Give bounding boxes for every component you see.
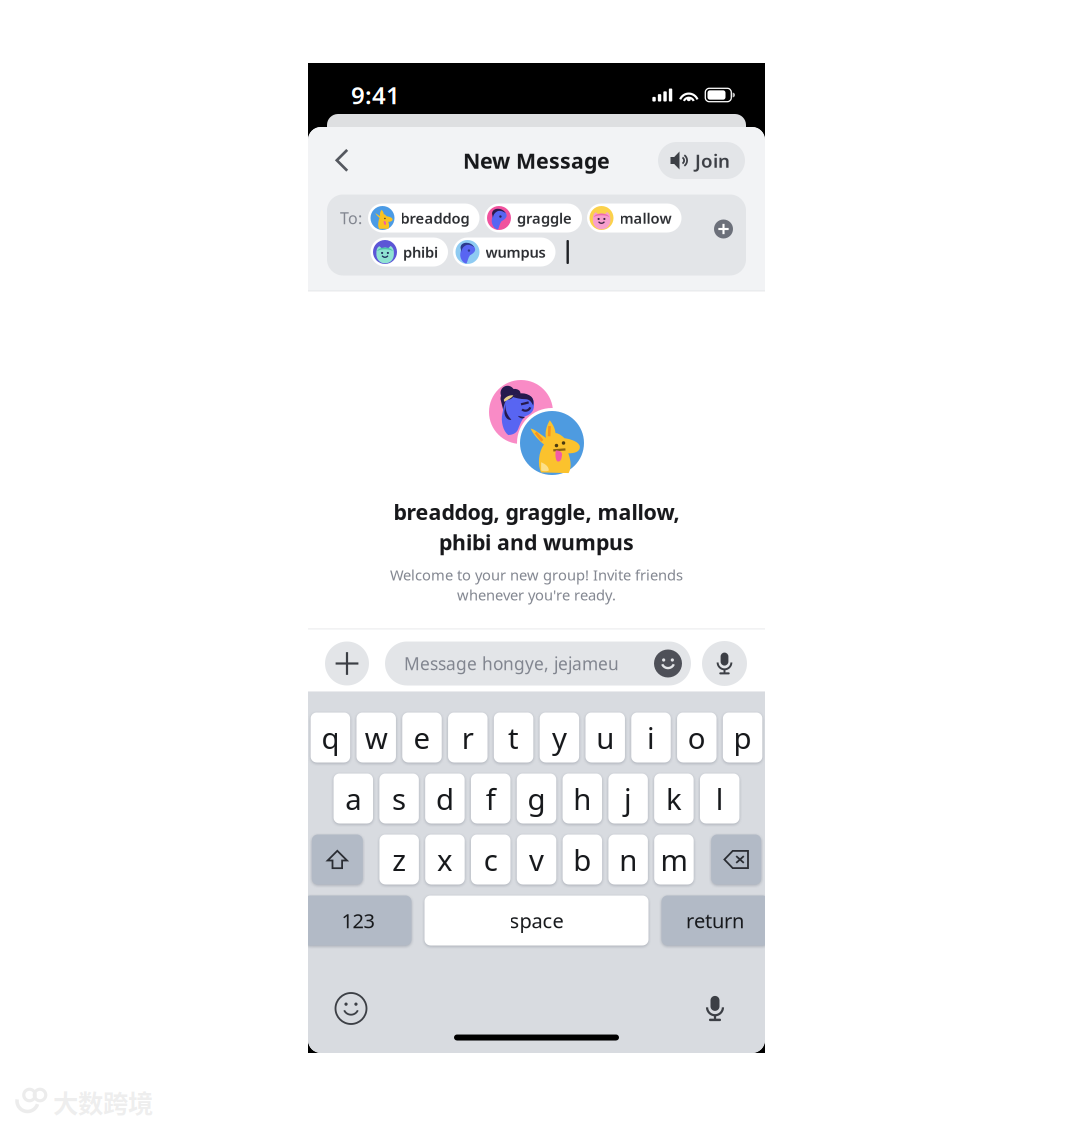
staticText: space: [509, 907, 563, 934]
button[interactable]: e: [402, 712, 442, 762]
button[interactable]: h: [562, 773, 602, 823]
button[interactable]: v: [517, 834, 556, 884]
staticText: n: [619, 840, 637, 879]
button[interactable]: space: [424, 895, 648, 945]
button[interactable]: k: [654, 773, 694, 823]
button[interactable]: c: [471, 834, 510, 884]
button[interactable]: Join: [658, 142, 745, 179]
staticText: x: [437, 840, 453, 879]
staticText: phibi and wumpus: [439, 528, 634, 556]
button[interactable]: g: [517, 773, 556, 823]
button[interactable]: y: [540, 712, 579, 762]
button[interactable]: i: [631, 712, 671, 762]
staticText: New Message: [463, 146, 610, 175]
button[interactable]: a: [333, 773, 373, 823]
staticText: graggle: [517, 208, 572, 228]
button[interactable]: Add attachment: [325, 641, 369, 685]
button[interactable]: o: [677, 712, 716, 762]
staticText: e: [413, 718, 430, 757]
button[interactable]: w: [356, 712, 396, 762]
button[interactable]: t: [494, 712, 533, 762]
staticText: y: [552, 718, 567, 757]
button[interactable]: q: [311, 712, 350, 762]
staticText: l: [716, 779, 724, 818]
staticText: u: [596, 718, 614, 757]
staticText: phibi: [403, 242, 438, 262]
button[interactable]: Shift: [312, 834, 363, 884]
staticText: return: [686, 907, 744, 934]
staticText: k: [666, 779, 682, 818]
button[interactable]: x: [425, 834, 465, 884]
staticText: w: [365, 718, 388, 757]
button[interactable]: Voice message: [702, 641, 747, 686]
button[interactable]: p: [723, 712, 762, 762]
button[interactable]: f: [471, 773, 510, 823]
staticText: j: [624, 779, 632, 818]
staticText: d: [436, 779, 454, 818]
staticText: s: [392, 779, 406, 818]
button[interactable]: m: [654, 834, 694, 884]
button[interactable]: s: [379, 773, 419, 823]
staticText: Welcome to your new group! Invite friend…: [390, 565, 683, 585]
button[interactable]: l: [700, 773, 739, 823]
staticText: 9:41: [351, 79, 400, 111]
staticText: t: [508, 718, 519, 757]
staticText: m: [660, 840, 687, 879]
staticText: h: [573, 779, 591, 818]
staticText: q: [321, 718, 339, 757]
button[interactable]: Dictation: [695, 988, 735, 1028]
staticText: Message hongye, jejameu: [404, 652, 619, 675]
staticText: To:: [340, 207, 362, 229]
staticText: wumpus: [485, 242, 545, 262]
staticText: v: [529, 840, 544, 879]
button[interactable]: 123: [304, 895, 411, 945]
button[interactable]: Add recipient: [714, 203, 733, 238]
button[interactable]: Emoji keyboard: [331, 988, 371, 1028]
staticText: whenever you're ready.: [457, 585, 616, 605]
staticText: 123: [341, 907, 374, 934]
staticText: Join: [695, 148, 730, 173]
staticText: p: [734, 718, 752, 757]
staticText: o: [688, 718, 706, 757]
button[interactable]: u: [585, 712, 625, 762]
staticText: mallow: [619, 208, 671, 228]
staticText: r: [462, 718, 474, 757]
staticText: f: [486, 779, 496, 818]
staticText: breaddog: [400, 208, 469, 228]
staticText: i: [647, 718, 655, 757]
button[interactable]: z: [379, 834, 419, 884]
staticText: 大数跨境: [53, 1084, 153, 1120]
staticText: breaddog, graggle, mallow,: [393, 497, 679, 526]
staticText: b: [573, 840, 591, 879]
button[interactable]: d: [425, 773, 465, 823]
staticText: a: [345, 779, 361, 818]
button[interactable]: j: [608, 773, 648, 823]
staticText: c: [484, 840, 498, 879]
button[interactable]: b: [563, 834, 602, 884]
button[interactable]: r: [448, 712, 487, 762]
staticText: z: [392, 840, 406, 879]
button[interactable]: Back: [322, 138, 362, 182]
staticText: g: [527, 779, 545, 818]
button[interactable]: n: [608, 834, 648, 884]
button[interactable]: Delete: [711, 834, 761, 884]
button[interactable]: return: [661, 895, 768, 945]
